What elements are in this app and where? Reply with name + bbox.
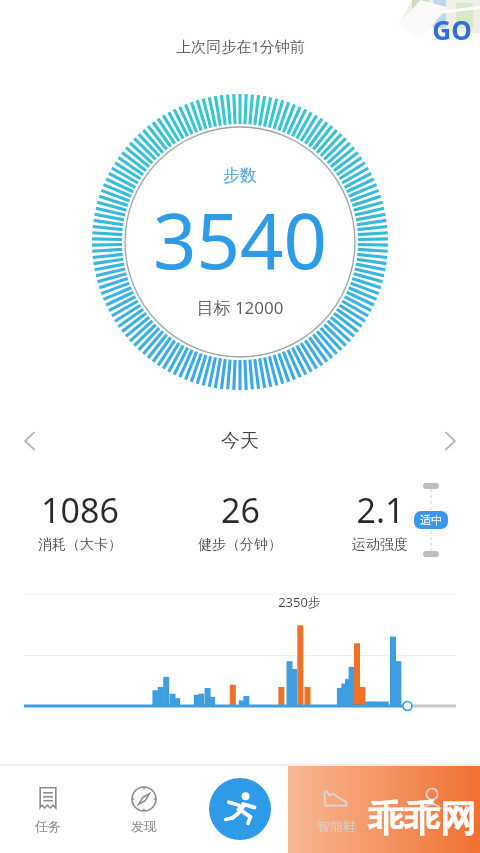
button[interactable]: 1086 bbox=[0, 487, 160, 554]
staticText: 今天 bbox=[221, 429, 259, 453]
staticText: 1086 bbox=[41, 487, 119, 533]
button[interactable]: GO map bbox=[395, 0, 480, 62]
staticText: 26 bbox=[221, 487, 260, 533]
button[interactable]: 26 bbox=[160, 487, 320, 554]
staticText: 乖乖网 bbox=[368, 796, 476, 841]
staticText: 2350步 bbox=[278, 593, 321, 611]
staticText: 发现 bbox=[131, 818, 157, 834]
staticText: 上次同步在1分钟前 bbox=[176, 36, 305, 56]
staticText: 适中 bbox=[420, 513, 442, 527]
staticText: 目标 12000 bbox=[196, 296, 284, 319]
button[interactable]: 智能鞋 bbox=[288, 765, 384, 853]
button[interactable]: Next day bbox=[420, 412, 480, 470]
staticText: 步数 bbox=[223, 165, 257, 186]
button[interactable]: 任务 bbox=[0, 765, 96, 853]
staticText: 智能鞋 bbox=[317, 818, 356, 834]
button[interactable]: Run bbox=[192, 765, 288, 853]
button[interactable]: Previous day bbox=[0, 412, 60, 470]
staticText: 2.1 bbox=[356, 487, 405, 533]
staticText: 任务 bbox=[35, 818, 61, 834]
button[interactable] bbox=[384, 765, 480, 853]
button[interactable]: 发现 bbox=[96, 765, 192, 853]
staticText: 消耗（大卡） bbox=[38, 536, 122, 554]
staticText: 运动强度 bbox=[352, 536, 408, 554]
staticText: 3540 bbox=[153, 188, 327, 292]
staticText: GO bbox=[432, 12, 472, 47]
staticText: 健步（分钟） bbox=[198, 536, 282, 554]
button[interactable]: 适中 bbox=[420, 513, 442, 527]
